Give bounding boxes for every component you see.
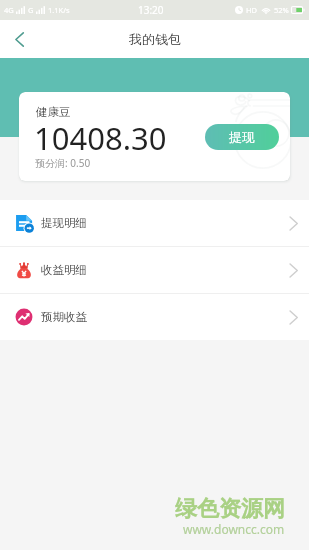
staticText: 我的钱包: [129, 31, 181, 47]
staticText: HD: [246, 5, 258, 15]
staticText: 收益明细: [41, 263, 87, 277]
staticText: 预分润: 0.50: [35, 156, 91, 170]
staticText: G: [28, 5, 34, 15]
staticText: 1.1K/s: [48, 5, 70, 15]
staticText: 13:20: [138, 3, 164, 17]
staticText: 52%: [274, 5, 289, 15]
button[interactable]: 收益明细: [0, 247, 309, 293]
staticText: 预期收益: [41, 310, 87, 324]
staticText: 提现明细: [41, 216, 87, 230]
button[interactable]: 提现明细: [0, 200, 309, 246]
staticText: 10408.30: [34, 117, 167, 159]
button[interactable]: 预期收益: [0, 294, 309, 340]
staticText: 健康豆: [36, 105, 71, 119]
staticText: 提现: [229, 129, 255, 145]
button[interactable]: 提现: [205, 124, 279, 150]
staticText: 绿色资源网: [175, 495, 285, 523]
button[interactable]: Back: [0, 20, 38, 58]
staticText: 4G: [4, 5, 14, 15]
staticText: www.downcc.com: [183, 521, 285, 537]
